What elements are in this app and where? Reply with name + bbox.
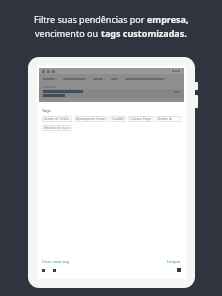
button[interactable] [63, 76, 88, 82]
button[interactable]: Criar nova tag [42, 259, 69, 264]
button[interactable] [39, 89, 184, 98]
staticText: empresa, [147, 13, 189, 25]
staticText: Relatório de Lucro [44, 126, 70, 130]
button[interactable]: Contas a Pagar [128, 116, 154, 122]
button[interactable] [43, 76, 58, 82]
staticText: Filtre suas pendências por [34, 13, 147, 25]
staticText: Criar nova tag [42, 259, 69, 264]
staticText: Limpar [167, 259, 181, 264]
staticText: Gestão de Crédito [44, 117, 70, 121]
button[interactable]: Relatório de Lucro [42, 125, 72, 131]
button[interactable] [93, 76, 106, 82]
button[interactable]: Gestão de Crédito [42, 116, 72, 122]
staticText: Contábil [112, 117, 124, 121]
button[interactable]: Limpar [167, 259, 181, 264]
staticText: tags customizadas. [101, 27, 187, 39]
button[interactable]: Contábil [110, 116, 126, 122]
button[interactable]: Aprovação de Contas [74, 116, 108, 122]
staticText: Contas a Pagar [130, 117, 152, 121]
staticText: Tags [42, 108, 51, 113]
staticText: Gestão de Acesso [158, 117, 179, 121]
button[interactable] [111, 76, 120, 82]
staticText: Aprovação de Contas [76, 117, 106, 121]
staticText: vencimento ou [35, 27, 101, 39]
button[interactable] [125, 76, 167, 82]
button[interactable]: Gestão de Acesso [156, 116, 181, 122]
